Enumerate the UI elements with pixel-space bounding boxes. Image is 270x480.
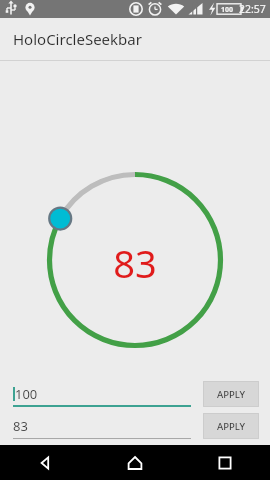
button[interactable]: Back <box>0 445 90 480</box>
button[interactable]: Recent apps <box>180 445 270 480</box>
staticText: APPLY <box>217 388 246 401</box>
staticText: 100 <box>221 5 234 15</box>
staticText: 83 <box>13 417 28 435</box>
staticText: 83 <box>0 237 270 289</box>
button[interactable]: APPLY <box>203 413 259 439</box>
staticText: 22:57 <box>239 2 266 16</box>
staticText: HoloCircleSeekbar <box>13 29 142 49</box>
staticText: 100 <box>15 385 38 403</box>
button[interactable]: 83 <box>13 413 191 439</box>
button[interactable]: APPLY <box>203 381 259 407</box>
staticText: APPLY <box>217 420 246 433</box>
button[interactable]: 83 <box>0 61 270 445</box>
button[interactable]: 100 <box>13 381 191 407</box>
button[interactable]: Home <box>90 445 180 480</box>
